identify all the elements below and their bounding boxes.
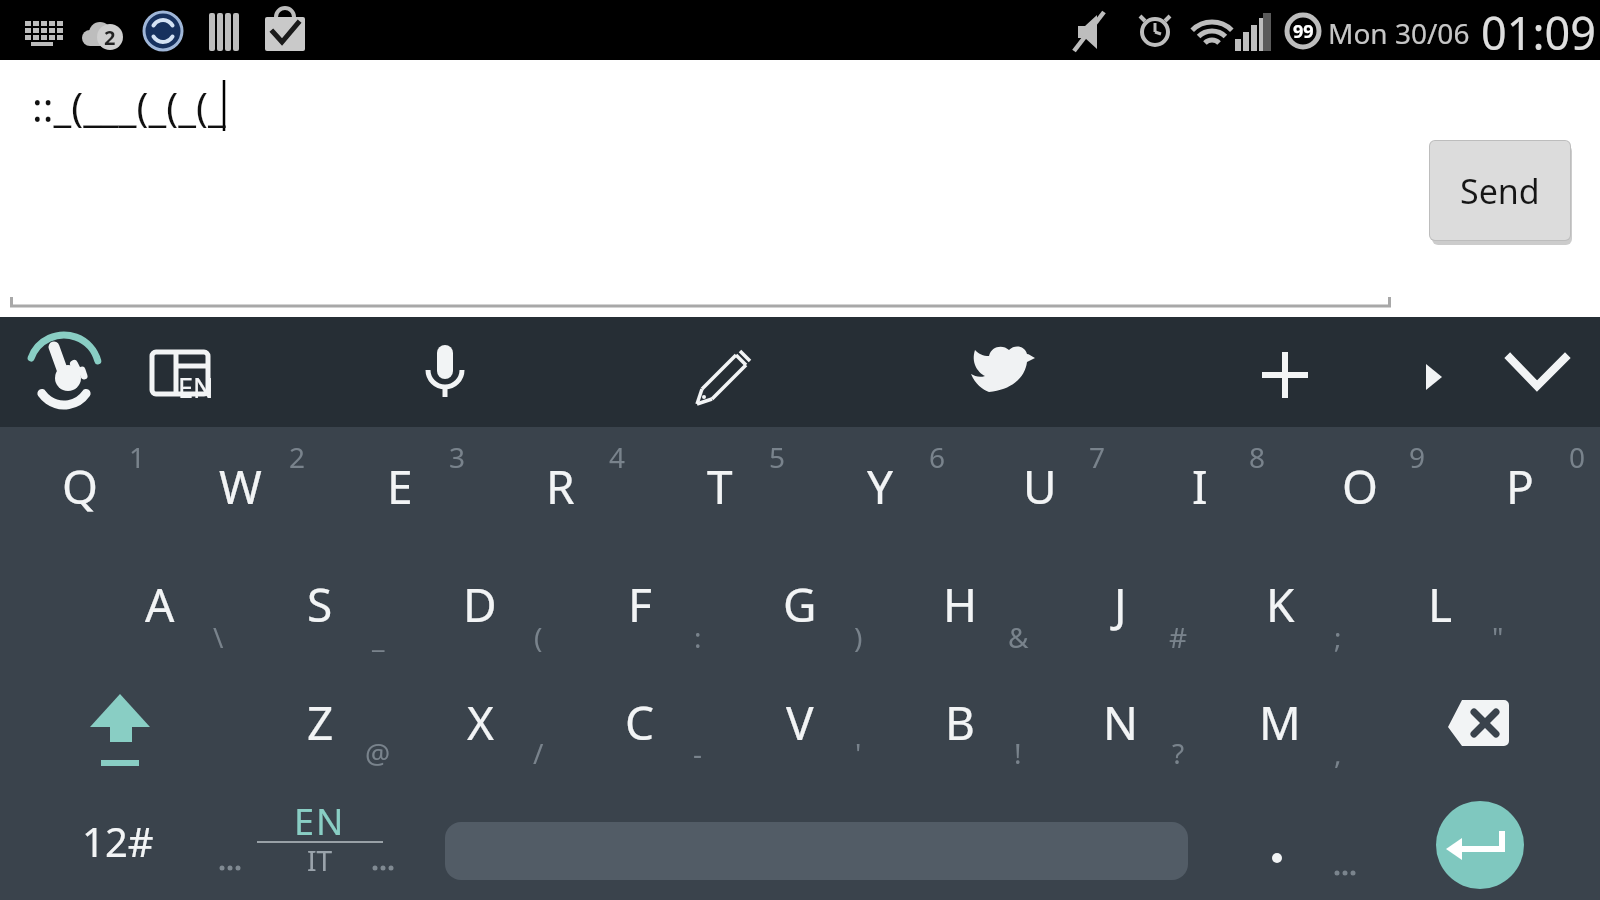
button[interactable]: Y [800, 427, 960, 545]
button[interactable] [1489, 320, 1585, 424]
button[interactable] [1436, 801, 1524, 889]
staticText: 4 [609, 438, 626, 476]
button[interactable] [1237, 320, 1333, 424]
staticText: 3 [449, 438, 466, 476]
button[interactable]: H [880, 545, 1040, 663]
button[interactable]: D [400, 545, 560, 663]
staticText: ' [855, 734, 862, 772]
button[interactable]: K [1200, 545, 1360, 663]
button[interactable] [1190, 781, 1400, 900]
button[interactable] [0, 663, 240, 781]
staticText: IT [307, 841, 333, 879]
staticText: P [1506, 455, 1534, 518]
staticText: 5 [769, 438, 786, 476]
staticText: - [693, 734, 703, 772]
staticText: : [694, 618, 702, 656]
staticText: ( [534, 618, 543, 656]
staticText: Z [307, 691, 334, 754]
button[interactable]: J [1040, 545, 1200, 663]
staticText: J [1114, 573, 1127, 636]
button[interactable] [959, 320, 1055, 424]
staticText: K [1266, 573, 1295, 636]
staticText: " [1492, 618, 1504, 656]
staticText: Send [1460, 168, 1540, 214]
staticText: H [943, 573, 978, 636]
button[interactable]: Send [1430, 141, 1570, 240]
button[interactable]: V [720, 663, 880, 781]
staticText: U [1023, 455, 1057, 518]
staticText: F [628, 573, 652, 636]
staticText: I [1192, 455, 1208, 518]
button[interactable]: A [80, 545, 240, 663]
staticText: _ [372, 618, 385, 656]
button[interactable]: F [560, 545, 720, 663]
staticText: T [707, 455, 733, 518]
staticText: 7 [1089, 438, 1106, 476]
button[interactable] [132, 320, 228, 424]
button[interactable]: G [720, 545, 880, 663]
staticText: 2 [104, 24, 116, 51]
button[interactable]: N [1040, 663, 1200, 781]
button[interactable] [235, 781, 440, 900]
staticText: , [1334, 734, 1342, 772]
button[interactable] [677, 320, 773, 424]
staticText: R [546, 455, 575, 518]
button[interactable]: U [960, 427, 1120, 545]
button[interactable]: L [1360, 545, 1520, 663]
staticText: 12# [82, 814, 154, 868]
staticText: ::_(___(_(_(_ [32, 79, 226, 133]
button[interactable] [1400, 663, 1600, 781]
staticText: 1 [129, 438, 146, 476]
staticText: O [1342, 455, 1378, 518]
staticText: / [533, 734, 544, 772]
staticText: @ [365, 734, 391, 772]
staticText: V [786, 691, 814, 754]
staticText: # [1169, 618, 1188, 656]
button[interactable]: E [320, 427, 480, 545]
staticText: E [387, 455, 413, 518]
button[interactable]: W [160, 427, 320, 545]
staticText: ; [1334, 618, 1342, 656]
button[interactable]: Z [240, 663, 400, 781]
button[interactable]: 12# [0, 781, 235, 900]
button[interactable]: M [1200, 663, 1360, 781]
button[interactable] [1385, 320, 1481, 424]
staticText: A [145, 573, 175, 636]
button[interactable]: T [640, 427, 800, 545]
staticText: ? [1172, 734, 1185, 772]
staticText: C [625, 691, 655, 754]
staticText: Y [867, 455, 894, 518]
staticText: Q [62, 455, 98, 518]
button[interactable]: P [1440, 427, 1600, 545]
button[interactable]: Q [0, 427, 160, 545]
staticText: ) [854, 618, 863, 656]
staticText: EN [294, 797, 346, 846]
staticText: 01:09 [1481, 2, 1597, 63]
button[interactable] [16, 320, 112, 424]
button[interactable]: C [560, 663, 720, 781]
button[interactable] [397, 320, 493, 424]
staticText: 99 [1293, 19, 1314, 44]
button[interactable]: O [1280, 427, 1440, 545]
staticText: S [307, 573, 333, 636]
staticText: 2 [289, 438, 306, 476]
staticText: G [783, 573, 817, 636]
staticText: M [1259, 691, 1301, 754]
staticText: W [219, 455, 262, 518]
button[interactable]: R [480, 427, 640, 545]
staticText: 0 [1569, 438, 1586, 476]
button[interactable]: X [400, 663, 560, 781]
staticText: 6 [929, 438, 946, 476]
staticText: N [1103, 691, 1138, 754]
staticText: D [463, 573, 497, 636]
staticText: 9 [1409, 438, 1426, 476]
button[interactable]: B [880, 663, 1040, 781]
staticText: 8 [1249, 438, 1266, 476]
staticText: \ [213, 618, 224, 656]
staticText: EN [178, 369, 214, 406]
button[interactable]: I [1120, 427, 1280, 545]
staticText: L [1428, 573, 1453, 636]
button[interactable]: S [240, 545, 400, 663]
staticText: ! [1014, 734, 1022, 772]
